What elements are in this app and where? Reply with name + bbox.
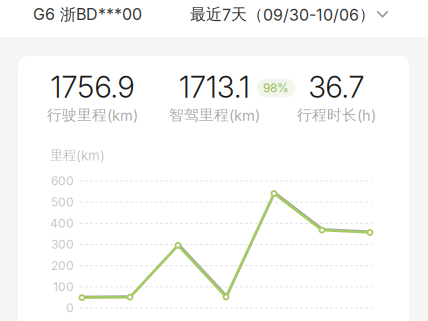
staticText: 1713.1 — [179, 69, 250, 105]
staticText: 300 — [51, 237, 74, 252]
staticText: 36.7 — [308, 69, 364, 105]
staticText: 500 — [51, 195, 74, 209]
button[interactable]: 最近7天（09/30-10/06） — [190, 0, 388, 29]
staticText: 100 — [53, 280, 74, 294]
staticText: 最近7天（09/30-10/06） — [190, 4, 375, 25]
staticText: 里程(km) — [50, 147, 105, 164]
staticText: 行驶里程(km) — [47, 106, 138, 124]
staticText: 600 — [51, 174, 74, 188]
staticText: 200 — [51, 258, 74, 273]
staticText: 智驾里程(km) — [169, 106, 260, 124]
staticText: 98% — [263, 81, 289, 95]
staticText: 1756.9 — [50, 69, 134, 105]
staticText: G6 浙BD***00 — [33, 4, 142, 25]
button[interactable]: G6 浙BD***00 — [33, 0, 142, 29]
staticText: 0 — [66, 301, 74, 315]
staticText: 400 — [50, 216, 74, 231]
staticText: 行程时长(h) — [297, 106, 376, 124]
